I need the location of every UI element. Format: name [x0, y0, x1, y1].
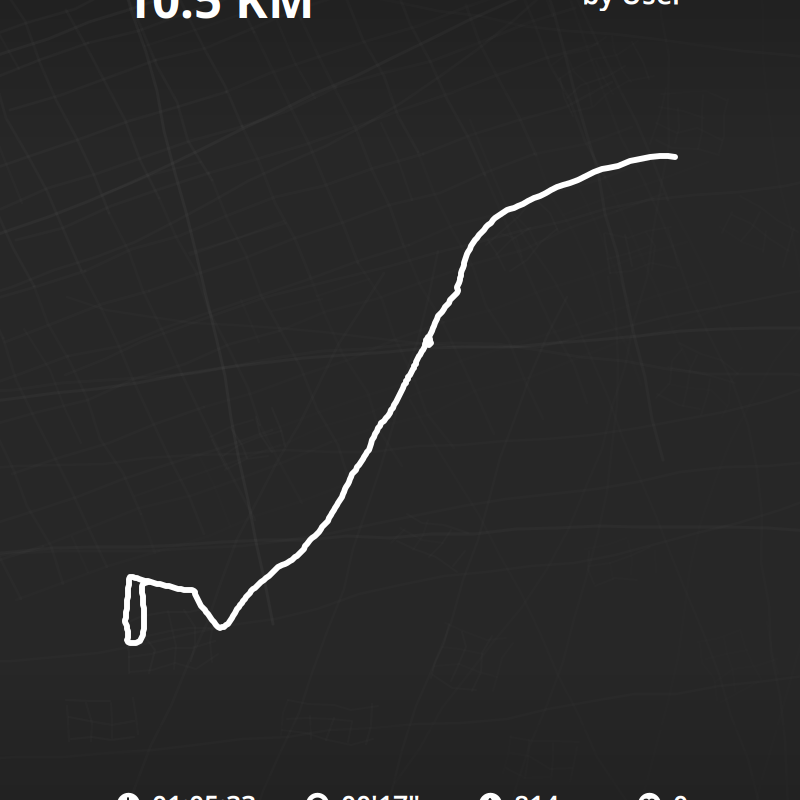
button[interactable]: Elevation gain	[479, 787, 559, 800]
staticText: by User	[582, 0, 684, 12]
staticText: 01:05:33	[152, 787, 256, 800]
button[interactable]: Average pace	[306, 787, 420, 800]
staticText: 0	[673, 787, 688, 800]
staticText: 00'17"	[341, 787, 420, 800]
staticText: 814	[514, 787, 559, 800]
button[interactable]: Duration	[117, 787, 256, 800]
staticText: 10.5 KM	[124, 0, 315, 31]
button[interactable]: Average heart rate	[638, 787, 688, 800]
